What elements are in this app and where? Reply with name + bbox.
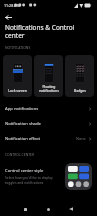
button[interactable]: Back: [65, 203, 77, 215]
button[interactable]: Recents: [19, 203, 31, 215]
staticText: Badges: [74, 88, 86, 93]
staticText: Notification shade: [5, 121, 41, 127]
staticText: None: [76, 136, 86, 141]
button[interactable]: Home: [42, 203, 54, 215]
button[interactable]: Control center style: [0, 160, 97, 193]
staticText: Control center style: [5, 168, 44, 174]
staticText: Lock screen: [8, 88, 27, 93]
staticText: Select how you'd like to display toggles…: [5, 175, 53, 185]
button[interactable]: Floating notifications: [34, 55, 63, 97]
staticText: CONTROL CENTER: [5, 152, 35, 157]
button[interactable]: Notification shade: [0, 116, 97, 131]
button[interactable]: App notifications: [0, 101, 97, 116]
staticText: Notification effect: [5, 136, 41, 142]
button[interactable]: Badges: [65, 55, 94, 97]
staticText: App notifications: [5, 106, 39, 112]
button[interactable]: Back: [2, 11, 15, 24]
button[interactable]: Lock screen: [3, 55, 32, 97]
button[interactable]: Notification effect: [0, 131, 97, 146]
staticText: Notifications & Control center: [5, 23, 81, 40]
staticText: NOTIFICATIONS: [5, 45, 31, 50]
staticText: 11:28 AM: [4, 3, 20, 8]
staticText: Floating notifications: [39, 84, 59, 93]
